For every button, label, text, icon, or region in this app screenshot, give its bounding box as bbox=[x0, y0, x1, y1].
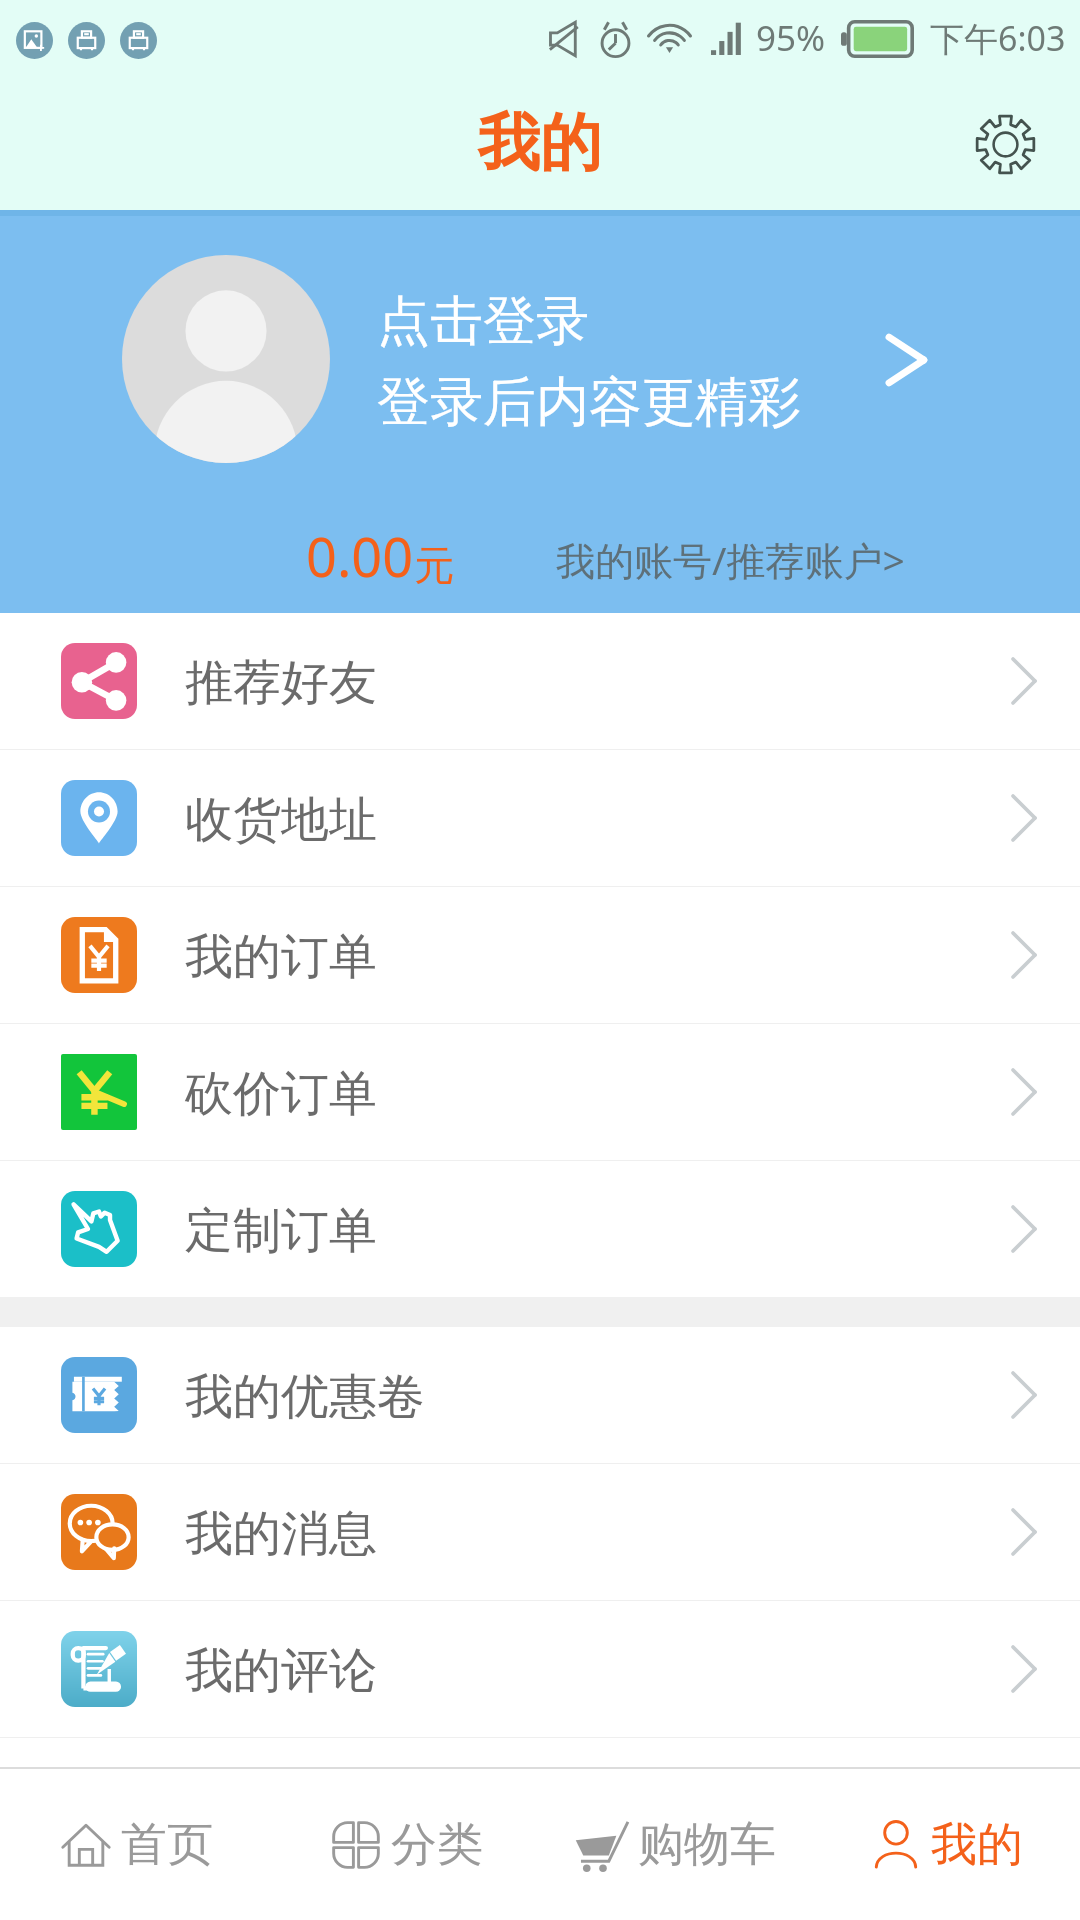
staticText: 元 bbox=[414, 540, 454, 590]
staticText: 定制订单 bbox=[185, 1201, 377, 1261]
staticText: 95% bbox=[756, 14, 826, 62]
button[interactable]: 分类 bbox=[270, 1769, 540, 1920]
button[interactable]: 我的订单 bbox=[0, 887, 1080, 1023]
staticText: 我的评论 bbox=[185, 1641, 377, 1701]
staticText: 登录后内容更精彩 bbox=[377, 369, 801, 436]
button[interactable]: 首页 bbox=[0, 1769, 270, 1920]
staticText: 我的订单 bbox=[185, 927, 377, 987]
button[interactable]: 我的优惠卷 bbox=[0, 1327, 1080, 1463]
staticText: 首页 bbox=[121, 1816, 213, 1874]
staticText: 砍价订单 bbox=[185, 1064, 377, 1124]
staticText: 推荐好友 bbox=[185, 653, 377, 713]
staticText: 我的账号/推荐账户> bbox=[556, 533, 905, 586]
button[interactable]: 我的 bbox=[810, 1769, 1080, 1920]
staticText: 下午6:03 bbox=[930, 15, 1066, 61]
staticText: 我的 bbox=[931, 1816, 1023, 1874]
staticText: 分类 bbox=[391, 1816, 483, 1874]
staticText: 0.00 bbox=[306, 519, 414, 593]
staticText: 我的消息 bbox=[185, 1504, 377, 1564]
staticText: 点击登录 bbox=[377, 288, 589, 355]
button[interactable]: 推荐好友 bbox=[0, 613, 1080, 749]
button[interactable]: 我的评论 bbox=[0, 1601, 1080, 1737]
button[interactable]: 收货地址 bbox=[0, 750, 1080, 886]
button[interactable]: 购物车 bbox=[540, 1769, 810, 1920]
button[interactable]: 我的消息 bbox=[0, 1464, 1080, 1600]
staticText: 收货地址 bbox=[185, 790, 377, 850]
staticText: 我的优惠卷 bbox=[185, 1367, 425, 1427]
staticText: 购物车 bbox=[638, 1816, 776, 1874]
button[interactable]: 砍价订单 bbox=[0, 1024, 1080, 1160]
staticText: 我的 bbox=[478, 104, 602, 182]
button[interactable]: 定制订单 bbox=[0, 1161, 1080, 1297]
button[interactable]: Settings bbox=[960, 99, 1050, 189]
